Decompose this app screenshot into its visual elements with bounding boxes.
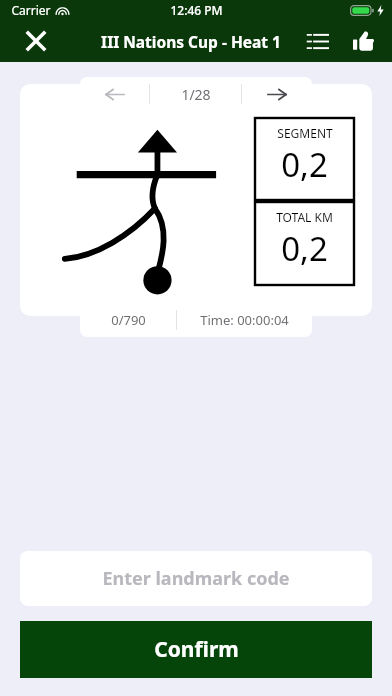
- staticText: 1/28: [181, 85, 211, 104]
- button[interactable]: Previous: [80, 77, 149, 111]
- staticText: 0/790: [111, 311, 146, 329]
- staticText: 12:46 PM: [170, 2, 223, 18]
- button[interactable]: Confirm: [20, 621, 372, 678]
- staticText: TOTAL KM: [276, 209, 333, 225]
- staticText: 0,2: [281, 142, 328, 187]
- staticText: Time: 00:00:04: [200, 311, 289, 329]
- staticText: III Nations Cup - Heat 1: [101, 31, 281, 52]
- staticText: Carrier: [11, 2, 51, 18]
- staticText: Enter landmark code: [102, 566, 290, 591]
- staticText: Confirm: [154, 635, 239, 664]
- button[interactable]: Next: [242, 77, 312, 111]
- button[interactable]: Enter landmark code: [20, 551, 372, 606]
- staticText: SEGMENT: [277, 125, 333, 141]
- staticText: 0,2: [281, 226, 328, 271]
- button[interactable]: Results list: [298, 22, 336, 60]
- button[interactable]: Close: [14, 20, 58, 62]
- button[interactable]: Thumbs up: [344, 22, 382, 60]
